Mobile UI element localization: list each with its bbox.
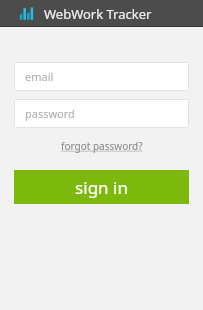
- staticText: email: [25, 69, 54, 84]
- staticText: password: [25, 106, 75, 121]
- button[interactable]: sign in: [14, 170, 189, 204]
- staticText: sign in: [75, 176, 128, 199]
- staticText: WebWork Tracker: [44, 5, 152, 23]
- button[interactable]: forgot password?: [57, 137, 147, 155]
- button[interactable]: password: [14, 99, 189, 128]
- staticText: forgot password?: [61, 139, 143, 153]
- button[interactable]: email: [14, 62, 189, 91]
